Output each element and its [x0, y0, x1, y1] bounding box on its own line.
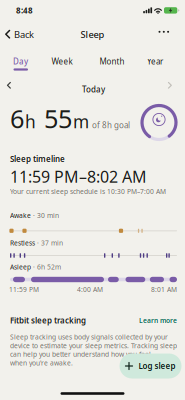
staticText: 8:01 AM: [151, 285, 177, 294]
staticText: · 37 min: [35, 239, 63, 247]
staticText: Sleep timeline: [10, 154, 65, 164]
staticText: 4:00 AM: [77, 285, 103, 294]
staticText: 8:48: [16, 5, 33, 16]
staticText: Asleep: [10, 262, 31, 271]
button[interactable]: Year: [139, 54, 171, 68]
staticText: Week: [51, 56, 72, 67]
staticText: Month: [99, 56, 124, 67]
staticText: Day: [13, 56, 28, 67]
staticText: Your current sleep schedule is 10:30 PM–…: [10, 187, 166, 196]
staticText: Awake: [10, 211, 31, 220]
staticText: 11:59 PM: [9, 285, 39, 294]
staticText: Fitbit sleep tracking: [10, 315, 86, 326]
button[interactable]: [157, 30, 170, 40]
staticText: Restless: [10, 239, 35, 247]
staticText: 6: [10, 102, 24, 135]
staticText: Year: [147, 56, 163, 67]
button[interactable]: Today: [68, 82, 118, 96]
staticText: · 30 min: [31, 211, 59, 220]
button[interactable]: Log sleep: [119, 353, 181, 378]
staticText: Today: [82, 84, 105, 95]
staticText: Log sleep: [138, 361, 175, 371]
staticText: 55: [37, 102, 72, 135]
staticText: Back: [14, 28, 34, 41]
staticText: 11:59 PM–8:02 AM: [10, 166, 147, 187]
staticText: can help you better understand how you f…: [10, 350, 151, 359]
button[interactable]: Day: [5, 54, 35, 68]
staticText: of 8h goal: [90, 120, 130, 130]
staticText: Learn more: [139, 316, 177, 325]
button[interactable]: [7, 82, 17, 94]
button[interactable]: [168, 82, 178, 94]
staticText: when you're awake.: [10, 358, 73, 367]
staticText: · 6h 52m: [31, 262, 61, 271]
button[interactable]: Learn more: [130, 314, 185, 326]
staticText: Sleep: [80, 28, 104, 41]
button[interactable]: Back: [0, 26, 38, 42]
button[interactable]: Month: [94, 54, 130, 68]
staticText: h: [25, 110, 36, 133]
staticText: device to estimate your sleep metrics. T…: [10, 341, 177, 350]
staticText: Sleep tracking uses body signals collect…: [10, 333, 168, 341]
button[interactable]: Week: [45, 54, 79, 68]
staticText: m: [73, 110, 89, 133]
